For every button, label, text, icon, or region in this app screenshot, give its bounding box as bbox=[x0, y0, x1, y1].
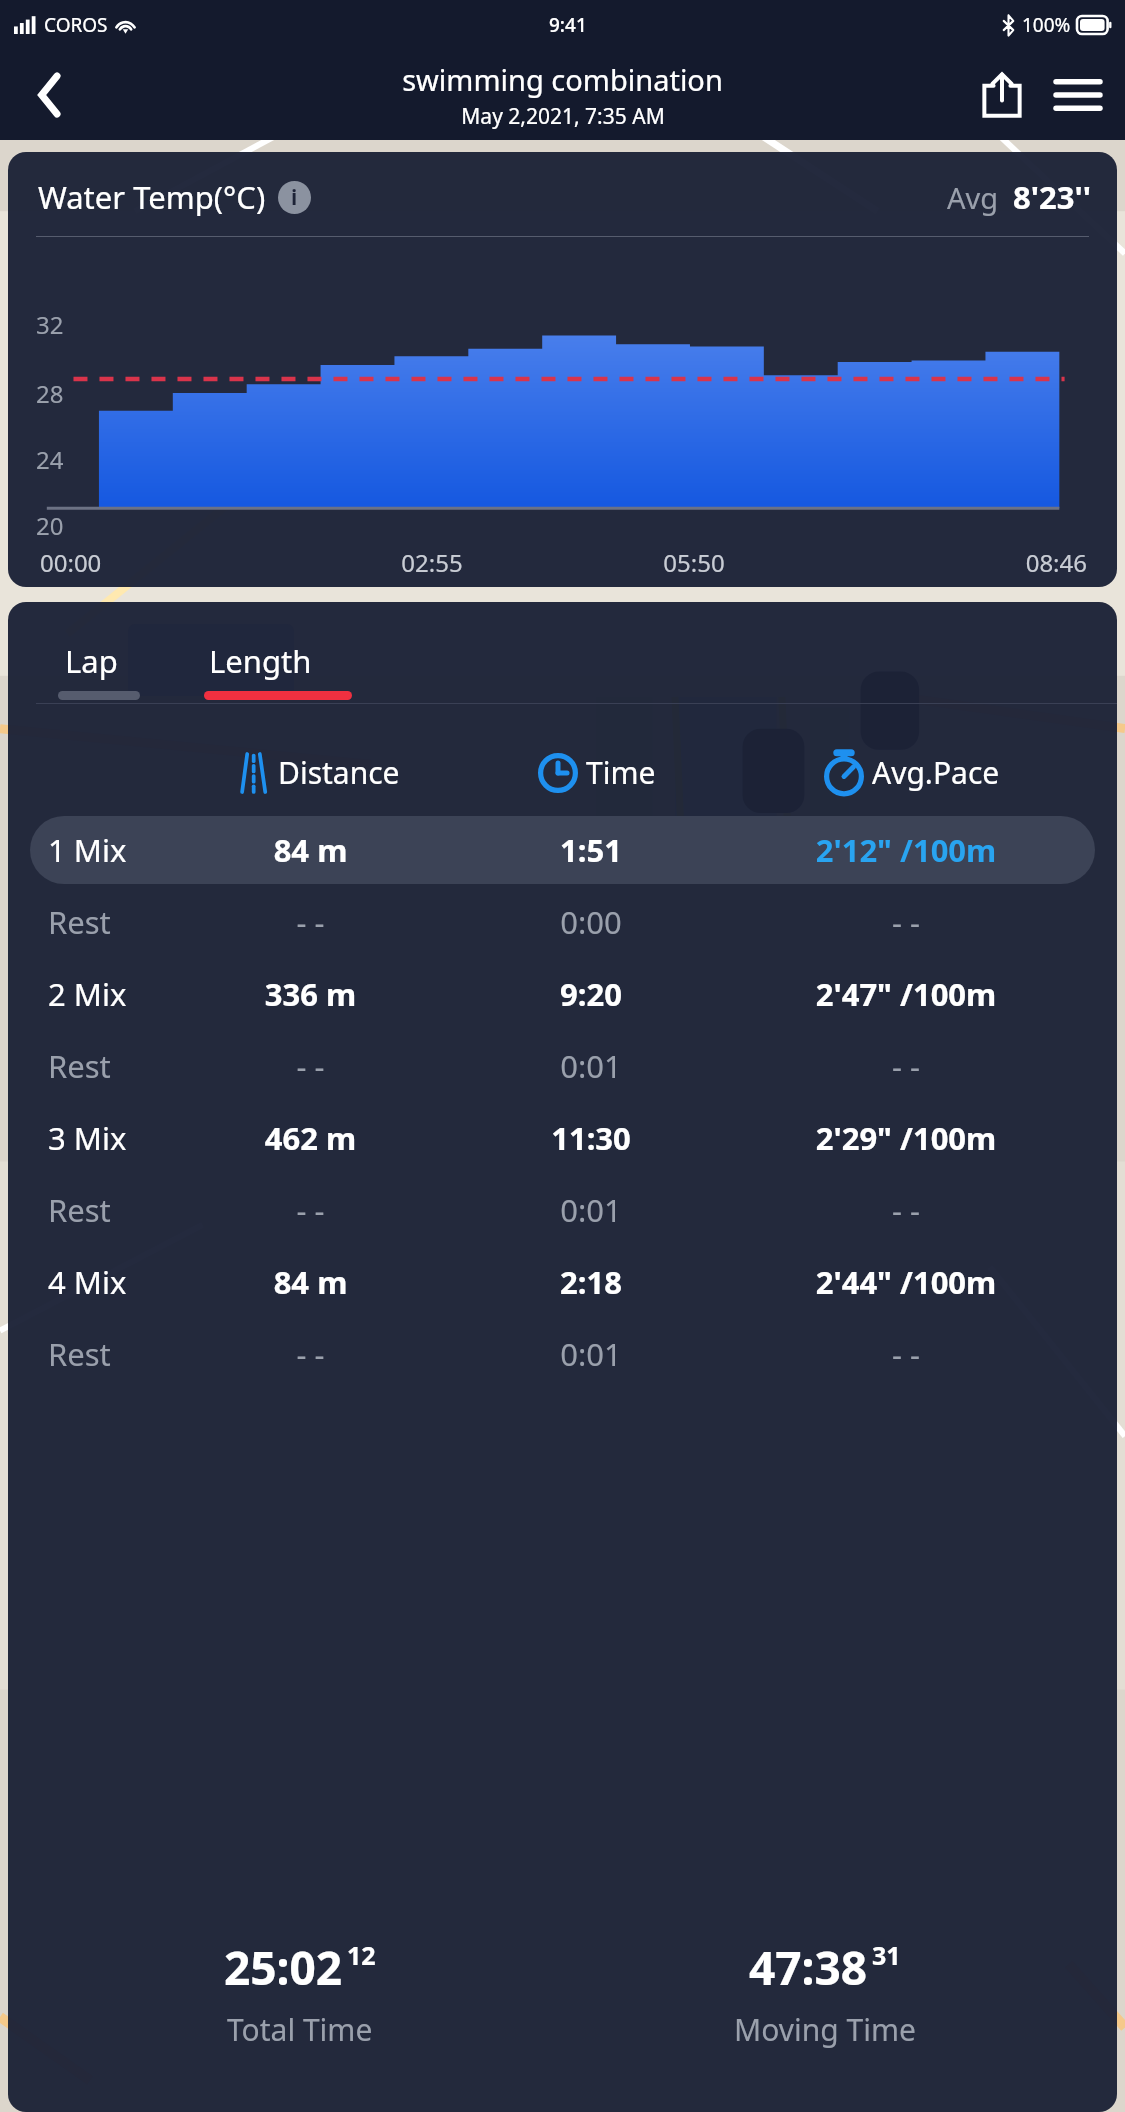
staticText: 20 bbox=[36, 509, 64, 542]
staticText: 2'44" /100m bbox=[731, 1261, 1081, 1303]
staticText: 1:51 bbox=[451, 829, 731, 871]
staticText: - - bbox=[731, 901, 1081, 943]
staticText: 0:01 bbox=[451, 1333, 731, 1375]
button[interactable]: 3 Mix bbox=[30, 1104, 1095, 1172]
staticText: 2'29" /100m bbox=[731, 1117, 1081, 1159]
staticText: Total Time bbox=[227, 2009, 373, 2050]
staticText: Distance bbox=[278, 752, 400, 793]
staticText: 2'47" /100m bbox=[731, 973, 1081, 1015]
button[interactable]: Menu bbox=[1049, 66, 1107, 124]
staticText: Moving Time bbox=[734, 2009, 916, 2050]
staticText: 2'12" /100m bbox=[731, 829, 1081, 871]
staticText: Rest bbox=[48, 1045, 111, 1087]
button[interactable]: Share bbox=[973, 66, 1031, 124]
staticText: Length bbox=[209, 640, 312, 682]
button[interactable]: Rest bbox=[30, 888, 1095, 956]
staticText: 4 Mix bbox=[48, 1261, 127, 1303]
button[interactable]: Rest bbox=[30, 1320, 1095, 1388]
staticText: 0:00 bbox=[451, 901, 731, 943]
staticText: 25:02 bbox=[224, 1936, 343, 1999]
staticText: 47:38 bbox=[749, 1936, 868, 1999]
staticText: 2 Mix bbox=[48, 973, 127, 1015]
staticText: 0:01 bbox=[451, 1189, 731, 1231]
staticText: 02:55 bbox=[301, 546, 563, 579]
staticText: - - bbox=[170, 1189, 451, 1231]
staticText: 9:20 bbox=[451, 973, 731, 1015]
staticText: - - bbox=[170, 1333, 451, 1375]
button[interactable]: Rest bbox=[30, 1176, 1095, 1244]
button[interactable]: Rest bbox=[30, 1032, 1095, 1100]
staticText: 05:50 bbox=[563, 546, 825, 579]
staticText: 28 bbox=[36, 377, 64, 410]
button[interactable]: 1 Mix bbox=[30, 816, 1095, 884]
staticText: Rest bbox=[48, 901, 111, 943]
staticText: Water Temp(°C) bbox=[38, 176, 266, 218]
staticText: 2:18 bbox=[451, 1261, 731, 1303]
staticText: - - bbox=[731, 1333, 1081, 1375]
staticText: Time bbox=[586, 752, 656, 793]
staticText: 336 m bbox=[170, 973, 451, 1015]
button[interactable]: Back bbox=[22, 67, 78, 123]
staticText: Avg.Pace bbox=[872, 752, 1000, 793]
staticText: 84 m bbox=[170, 829, 451, 871]
staticText: 12 bbox=[347, 1938, 376, 1972]
staticText: 32 bbox=[36, 308, 64, 341]
staticText: Rest bbox=[48, 1333, 111, 1375]
staticText: 9:41 bbox=[549, 12, 587, 38]
button[interactable]: Length bbox=[184, 628, 336, 694]
staticText: 11:30 bbox=[451, 1117, 731, 1159]
staticText: 24 bbox=[36, 443, 64, 476]
button[interactable]: Lap bbox=[54, 628, 128, 694]
staticText: Lap bbox=[65, 640, 118, 682]
staticText: i bbox=[291, 183, 298, 212]
staticText: 1 Mix bbox=[48, 829, 127, 871]
staticText: May 2,2021, 7:35 AM bbox=[461, 102, 665, 131]
staticText: 100% bbox=[1022, 12, 1071, 38]
button[interactable]: Info bbox=[278, 181, 311, 214]
staticText: Avg bbox=[947, 178, 999, 217]
staticText: 462 m bbox=[170, 1117, 451, 1159]
staticText: 31 bbox=[872, 1938, 901, 1972]
staticText: 84 m bbox=[170, 1261, 451, 1303]
staticText: - - bbox=[731, 1189, 1081, 1231]
staticText: 3 Mix bbox=[48, 1117, 127, 1159]
button[interactable]: 2 Mix bbox=[30, 960, 1095, 1028]
staticText: 8'23'' bbox=[1013, 176, 1091, 218]
staticText: 0:01 bbox=[451, 1045, 731, 1087]
staticText: swimming combination bbox=[402, 60, 723, 99]
staticText: Rest bbox=[48, 1189, 111, 1231]
staticText: - - bbox=[731, 1045, 1081, 1087]
button[interactable]: 4 Mix bbox=[30, 1248, 1095, 1316]
staticText: 00:00 bbox=[40, 546, 301, 579]
staticText: COROS bbox=[44, 12, 108, 38]
staticText: 08:46 bbox=[825, 546, 1087, 579]
staticText: - - bbox=[170, 1045, 451, 1087]
staticText: - - bbox=[170, 901, 451, 943]
